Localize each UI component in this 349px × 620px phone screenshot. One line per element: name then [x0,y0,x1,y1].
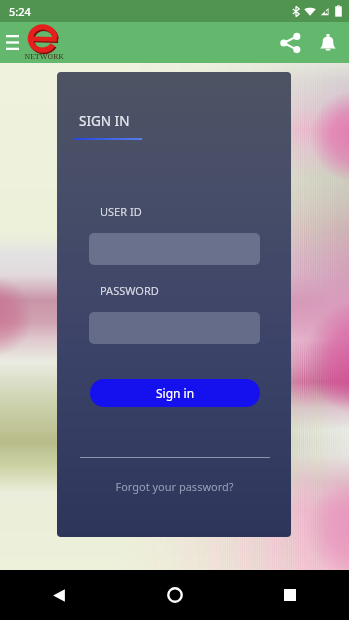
button[interactable]: Home [156,576,194,614]
staticText: PASSWORD [100,283,159,298]
staticText: USER ID [100,204,142,219]
button[interactable]: Back [40,576,78,614]
button[interactable]: Recents [271,576,309,614]
button[interactable]: Menu [0,22,24,63]
button[interactable]: Forgot your password? [57,476,291,496]
staticText: NETWORK [24,51,64,61]
staticText: Forgot your password? [115,479,234,494]
staticText: SIGN IN [79,112,130,130]
staticText: 5:24 [9,4,31,19]
button[interactable]: Sign in [90,379,260,407]
staticText: Sign in [156,385,195,401]
button[interactable]: Notifications [309,22,347,63]
button[interactable]: Share [271,22,309,63]
